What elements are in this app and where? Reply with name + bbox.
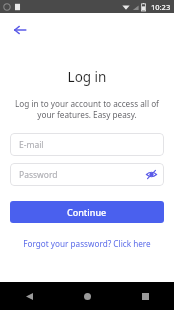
button[interactable]: Password: [10, 163, 164, 186]
button[interactable]: Back: [7, 17, 33, 43]
staticText: Log in: [0, 68, 174, 86]
button[interactable]: Home: [58, 282, 116, 310]
button[interactable]: Back: [0, 282, 58, 310]
button[interactable]: Show password: [143, 166, 160, 183]
staticText: E-mail: [19, 139, 44, 151]
button[interactable]: Recent apps: [116, 282, 174, 310]
staticText: Password: [19, 169, 58, 181]
button[interactable]: Forgot your password? Click here: [19, 236, 155, 251]
staticText: 10:23: [151, 2, 171, 12]
button[interactable]: E-mail: [10, 133, 164, 156]
staticText: Forgot your password? Click here: [23, 238, 151, 249]
staticText: Log in to your account to access all of …: [12, 98, 162, 120]
button[interactable]: Continue: [10, 201, 164, 223]
staticText: Continue: [67, 206, 107, 218]
